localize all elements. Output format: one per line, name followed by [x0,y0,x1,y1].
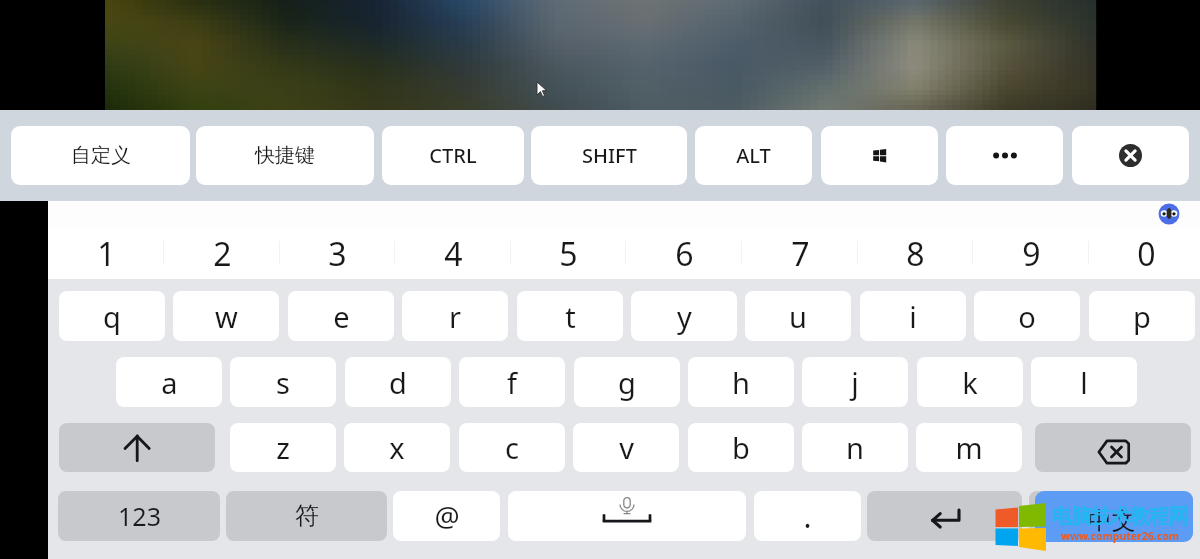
staticText: 1 [97,232,116,276]
staticText: x [389,428,405,467]
button[interactable]: i [860,291,966,341]
staticText: t [565,297,576,336]
staticText: o [1018,297,1036,336]
staticText: z [276,428,290,467]
button[interactable]: c [459,423,565,472]
button[interactable]: 快捷键 [196,126,374,185]
staticText: u [789,297,807,336]
button[interactable] [1029,491,1193,541]
button[interactable]: SHIFT [531,126,687,185]
button[interactable]: Close [1072,126,1189,185]
staticText: 6 [675,232,694,276]
button[interactable]: w [173,291,279,341]
staticText: @ [434,497,460,535]
staticText: 5 [559,232,578,276]
button[interactable]: Windows key [821,126,938,185]
button[interactable]: 1 [49,228,163,279]
button[interactable]: d [345,357,451,407]
staticText: 0 [1137,232,1156,276]
staticText: c [505,428,519,467]
button[interactable]: ALT [695,126,812,185]
button[interactable]: 3 [280,228,394,279]
button[interactable]: u [745,291,851,341]
staticText: a [161,363,178,402]
button[interactable]: 自定义 [11,126,190,185]
button[interactable]: Shift [59,423,215,472]
staticText: i [909,297,917,336]
staticText: p [1133,297,1151,336]
button[interactable]: CTRL [382,126,524,185]
staticText: r [449,297,461,336]
button[interactable]: 9 [974,228,1088,279]
button[interactable]: Enter [867,491,1022,541]
button[interactable]: m [916,423,1022,472]
button[interactable]: 8 [858,228,972,279]
staticText: l [1080,363,1088,402]
staticText: ALT [736,142,771,169]
button[interactable]: Space [508,491,746,541]
staticText: 3 [328,232,347,276]
button[interactable]: r [402,291,508,341]
button[interactable]: 0 [1089,228,1200,279]
button[interactable]: x [344,423,450,472]
button[interactable]: 5 [511,228,625,279]
button[interactable]: p [1089,291,1195,341]
staticText: 4 [444,232,463,276]
button[interactable]: q [59,291,165,341]
staticText: www.computer26.com [1050,529,1190,543]
staticText: 自定义 [71,143,131,168]
button[interactable]: 符 [226,491,387,541]
staticText: 7 [791,232,810,276]
staticText: j [851,363,859,402]
button[interactable]: Baidu IME [1158,203,1180,225]
button[interactable]: e [288,291,394,341]
button[interactable]: 2 [165,228,279,279]
button[interactable]: @ [393,491,500,541]
button[interactable]: Backspace [1035,423,1191,472]
staticText: y [677,297,692,336]
staticText: k [962,363,978,402]
button[interactable]: v [573,423,679,472]
staticText: 123 [118,499,161,533]
button[interactable]: f [459,357,565,407]
button[interactable]: More options [946,126,1063,185]
button[interactable]: l [1031,357,1137,407]
staticText: 2 [213,232,232,276]
other: More options [993,152,1017,159]
button[interactable]: . [754,491,861,541]
button[interactable]: 4 [396,228,510,279]
button[interactable]: z [230,423,336,472]
staticText: . [803,496,812,537]
staticText: 中文 [1040,506,1184,536]
button[interactable]: 6 [627,228,741,279]
staticText: 快捷键 [255,143,315,168]
staticText: SHIFT [582,142,637,169]
staticText: b [732,428,750,467]
staticText: w [215,297,238,336]
button[interactable]: y [631,291,737,341]
button[interactable]: o [974,291,1080,341]
staticText: 符 [295,501,319,531]
button[interactable]: 7 [743,228,857,279]
staticText: f [507,363,517,402]
button[interactable]: t [517,291,623,341]
button[interactable]: b [688,423,794,472]
other: Close [1119,144,1142,167]
staticText: g [618,363,636,402]
staticText: n [846,428,864,467]
staticText: 9 [1022,232,1041,276]
button[interactable]: a [116,357,222,407]
staticText: d [389,363,407,402]
button[interactable]: k [917,357,1023,407]
other: Windows key [873,149,887,163]
button[interactable]: j [802,357,908,407]
staticText: CTRL [429,142,477,169]
button[interactable]: n [802,423,908,472]
button[interactable]: h [688,357,794,407]
button[interactable]: s [230,357,336,407]
staticText: v [619,428,634,467]
button[interactable]: g [574,357,680,407]
staticText: 电脑技术教程网 [1048,504,1192,526]
staticText: s [276,363,290,402]
button[interactable]: 123 [58,491,220,541]
